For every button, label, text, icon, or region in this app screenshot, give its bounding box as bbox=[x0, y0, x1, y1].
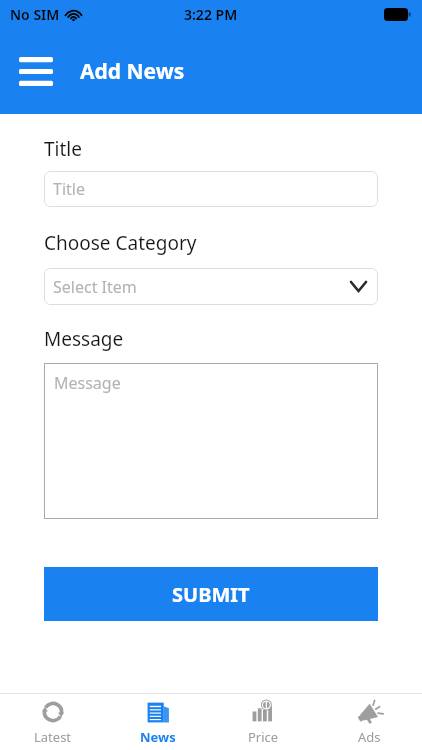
staticText: Latest bbox=[34, 728, 72, 746]
button[interactable]: Open navigation menu bbox=[12, 47, 60, 95]
button[interactable]: News bbox=[105, 694, 210, 750]
staticText: SUBMIT bbox=[172, 581, 250, 608]
staticText: Title bbox=[53, 178, 85, 200]
button[interactable]: Price bbox=[210, 694, 316, 750]
button[interactable]: SUBMIT bbox=[44, 567, 378, 621]
button[interactable]: Message bbox=[44, 363, 378, 519]
staticText: No SIM bbox=[10, 5, 60, 24]
staticText: Add News bbox=[80, 57, 185, 86]
staticText: 3:22 PM bbox=[184, 5, 238, 24]
staticText: Price bbox=[248, 728, 279, 746]
staticText: Choose Category bbox=[44, 230, 197, 256]
staticText: Message bbox=[54, 372, 121, 394]
button[interactable]: Ads bbox=[316, 694, 422, 750]
button[interactable]: Title bbox=[44, 171, 378, 207]
staticText: Ads bbox=[358, 728, 381, 746]
staticText: Select Item bbox=[53, 276, 137, 298]
staticText: Message bbox=[44, 326, 124, 352]
button[interactable]: Select Item bbox=[44, 268, 378, 305]
button[interactable]: Latest bbox=[0, 694, 105, 750]
staticText: Title bbox=[44, 136, 82, 162]
staticText: News bbox=[140, 728, 176, 746]
